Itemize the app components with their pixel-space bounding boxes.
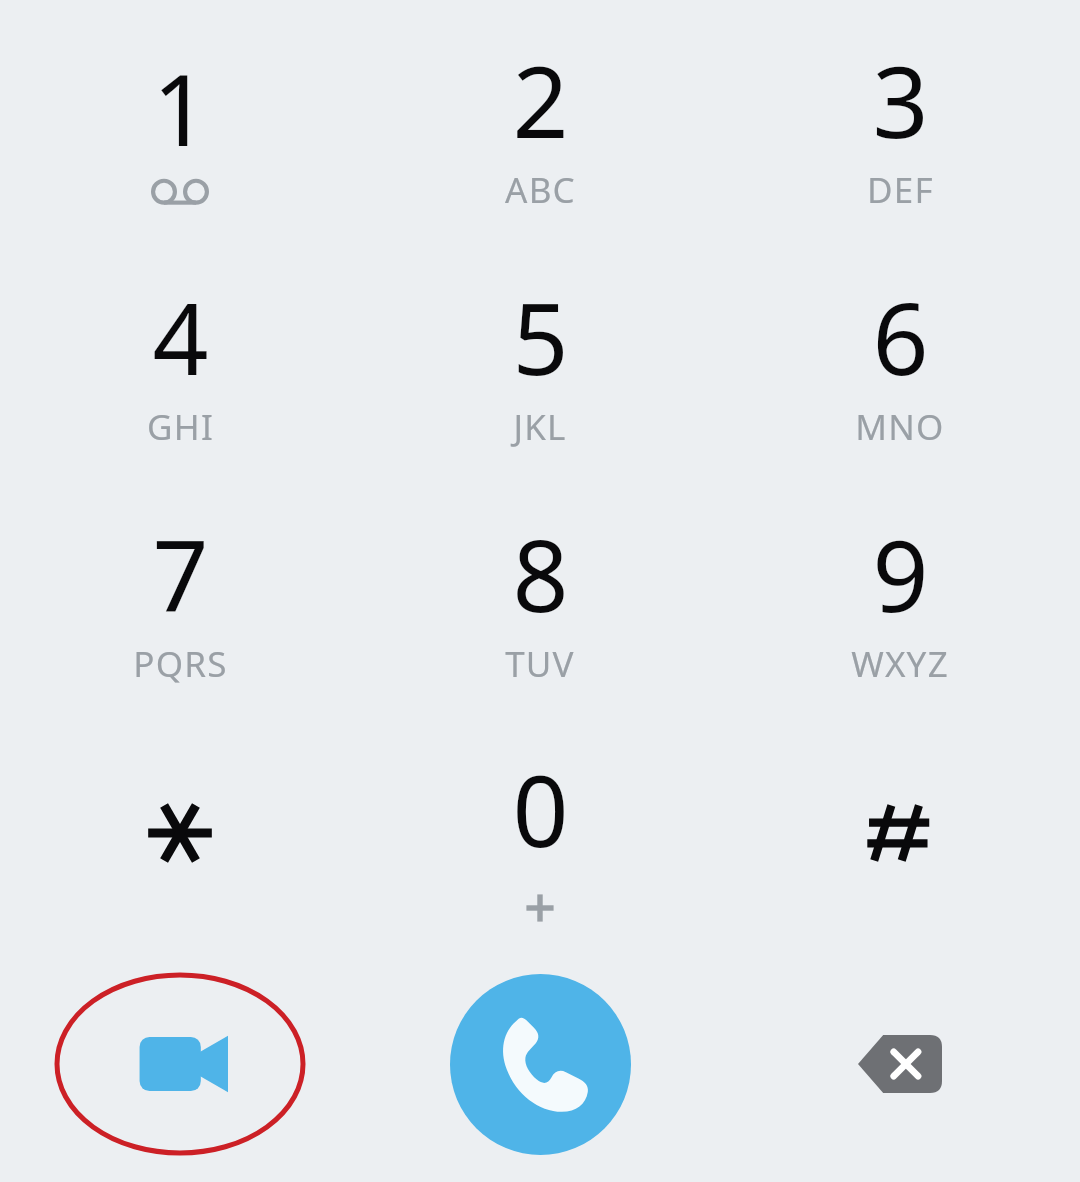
- staticText: TUV: [505, 640, 575, 688]
- button[interactable]: 5: [360, 237, 720, 474]
- button[interactable]: [0, 710, 360, 946]
- button[interactable]: 4: [0, 237, 360, 474]
- staticText: 2: [512, 33, 569, 166]
- staticText: DEF: [867, 166, 934, 214]
- staticText: MNO: [855, 403, 945, 451]
- staticText: 0: [512, 742, 569, 875]
- button[interactable]: 1: [0, 0, 360, 237]
- button[interactable]: 2: [360, 0, 720, 237]
- staticText: 1: [152, 41, 209, 174]
- staticText: 9: [872, 507, 929, 640]
- button[interactable]: Backspace: [830, 1009, 970, 1119]
- staticText: 6: [872, 270, 929, 403]
- staticText: 5: [512, 270, 569, 403]
- button[interactable]: 6: [720, 237, 1080, 474]
- staticText: WXYZ: [851, 640, 949, 688]
- button[interactable]: 3: [720, 0, 1080, 237]
- button[interactable]: 9: [720, 474, 1080, 710]
- button[interactable]: [720, 710, 1080, 946]
- staticText: 8: [512, 507, 569, 640]
- staticText: JKL: [513, 403, 567, 451]
- staticText: 7: [152, 507, 209, 640]
- button[interactable]: 8: [360, 474, 720, 710]
- staticText: PQRS: [133, 640, 228, 688]
- staticText: GHI: [147, 403, 214, 451]
- button[interactable]: 7: [0, 474, 360, 710]
- button[interactable]: Video call: [55, 969, 305, 1159]
- staticText: 3: [872, 33, 929, 166]
- staticText: ABC: [505, 166, 576, 214]
- staticText: 4: [152, 270, 209, 403]
- button[interactable]: 0: [360, 710, 720, 946]
- button[interactable]: Call: [450, 974, 631, 1155]
